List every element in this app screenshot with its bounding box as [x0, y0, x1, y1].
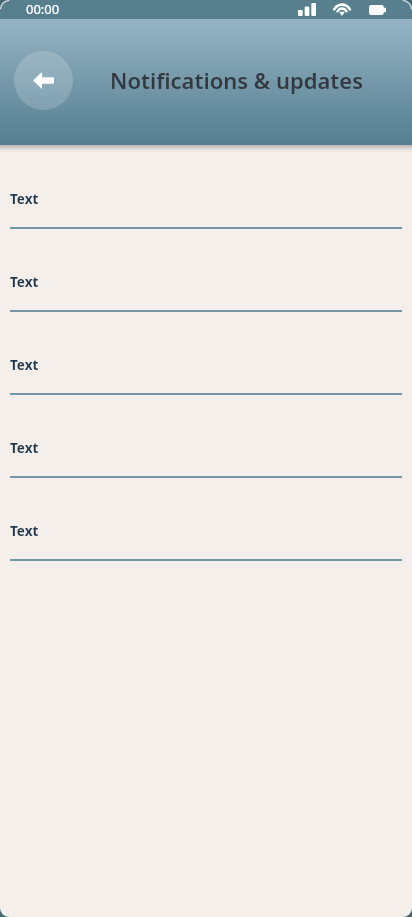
staticText: Text — [10, 522, 39, 540]
staticText: 00:00 — [26, 0, 60, 18]
button[interactable]: Back — [14, 51, 73, 110]
button[interactable]: Text — [0, 311, 412, 394]
staticText: Text — [10, 273, 39, 291]
button[interactable]: Text — [0, 145, 412, 228]
staticText: Notifications & updates — [110, 65, 363, 95]
button[interactable]: Text — [0, 394, 412, 477]
staticText: Text — [10, 190, 39, 208]
staticText: Text — [10, 356, 39, 374]
staticText: Text — [10, 439, 39, 457]
button[interactable]: Text — [0, 228, 412, 311]
button[interactable]: Text — [0, 477, 412, 560]
